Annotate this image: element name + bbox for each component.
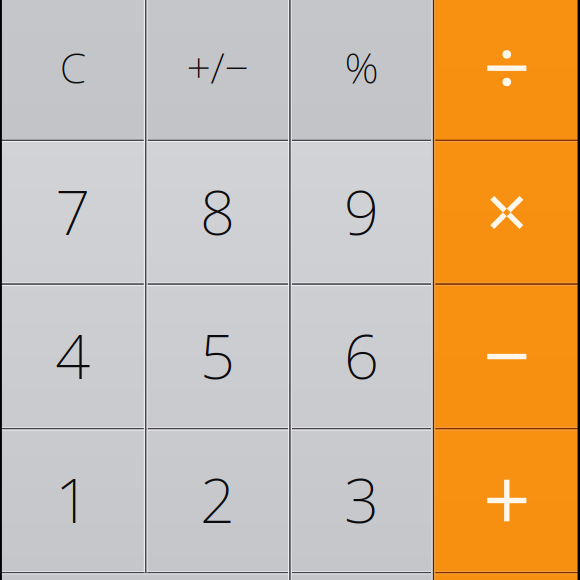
- staticText: 8: [200, 170, 235, 252]
- button[interactable]: +/−: [145, 0, 289, 140]
- staticText: 6: [344, 314, 379, 396]
- button[interactable]: Divide: [434, 0, 580, 140]
- button[interactable]: [289, 572, 434, 580]
- button[interactable]: 9: [289, 140, 434, 284]
- button[interactable]: 8: [145, 140, 289, 284]
- button[interactable]: Multiply: [434, 140, 580, 284]
- staticText: 3: [344, 458, 379, 540]
- button[interactable]: 3: [289, 429, 434, 572]
- staticText: %: [345, 39, 379, 95]
- staticText: 5: [200, 314, 235, 396]
- staticText: 9: [344, 170, 379, 252]
- staticText: C: [60, 39, 86, 95]
- button[interactable]: 5: [145, 284, 289, 429]
- button[interactable]: 4: [0, 284, 145, 429]
- staticText: 7: [55, 170, 90, 252]
- button[interactable]: Plus: [434, 429, 580, 572]
- staticText: 1: [55, 458, 90, 540]
- button[interactable]: C: [0, 0, 145, 140]
- staticText: 2: [200, 458, 235, 540]
- button[interactable]: [0, 572, 289, 580]
- button[interactable]: %: [289, 0, 434, 140]
- button[interactable]: 7: [0, 140, 145, 284]
- button[interactable]: 6: [289, 284, 434, 429]
- button[interactable]: 1: [0, 429, 145, 572]
- button[interactable]: Minus: [434, 284, 580, 429]
- button[interactable]: 2: [145, 429, 289, 572]
- staticText: +/−: [186, 39, 248, 95]
- button[interactable]: Equals: [434, 572, 580, 580]
- staticText: 4: [55, 314, 90, 396]
